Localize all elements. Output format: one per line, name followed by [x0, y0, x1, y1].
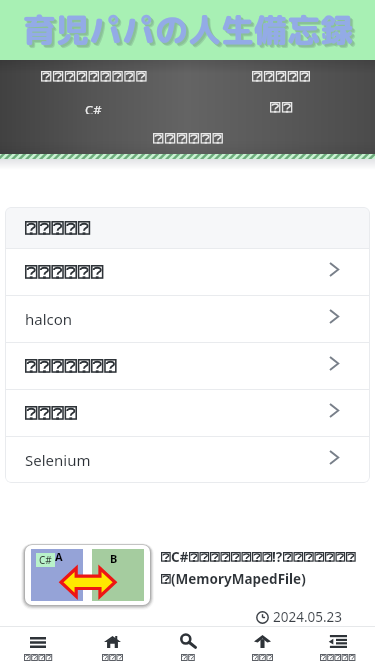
button[interactable]: 育児パパの人生備忘録: [0, 0, 375, 60]
staticText: 育児パパの人生備忘録: [25, 9, 355, 55]
button[interactable]: Menu link: [187, 101, 375, 114]
staticText: C#: [85, 101, 102, 114]
staticText: C#: [39, 553, 52, 567]
button[interactable]: Selenium: [5, 437, 370, 483]
button[interactable]: Menu link: [0, 132, 375, 145]
staticText: Selenium: [25, 450, 91, 470]
staticText: A: [55, 549, 63, 564]
button[interactable]: [5, 343, 370, 389]
button[interactable]: Menu link: [0, 70, 187, 83]
button[interactable]: Categories: [300, 627, 375, 667]
button[interactable]: [5, 390, 370, 436]
button[interactable]: Menu link: [0, 101, 187, 114]
staticText: (MemoryMapedFile): [171, 570, 306, 588]
button[interactable]: Scroll to top: [225, 627, 300, 667]
button[interactable]: halcon: [5, 296, 370, 342]
button[interactable]: Search: [150, 627, 225, 667]
staticText: 育児パパの人生備忘録: [26, 10, 356, 56]
staticText: !?: [272, 548, 283, 566]
staticText: B: [110, 551, 118, 566]
staticText: halcon: [25, 309, 73, 329]
button[interactable]: Home: [75, 627, 150, 667]
button[interactable]: Menu link: [187, 70, 375, 83]
button[interactable]: [5, 249, 370, 295]
staticText: 2024.05.23: [273, 608, 343, 626]
button[interactable]: Article thumbnail: [31, 549, 144, 601]
staticText: 育児パパの人生備忘録: [23, 7, 353, 53]
button[interactable]: Menu: [0, 627, 75, 667]
staticText: C#: [171, 548, 189, 566]
